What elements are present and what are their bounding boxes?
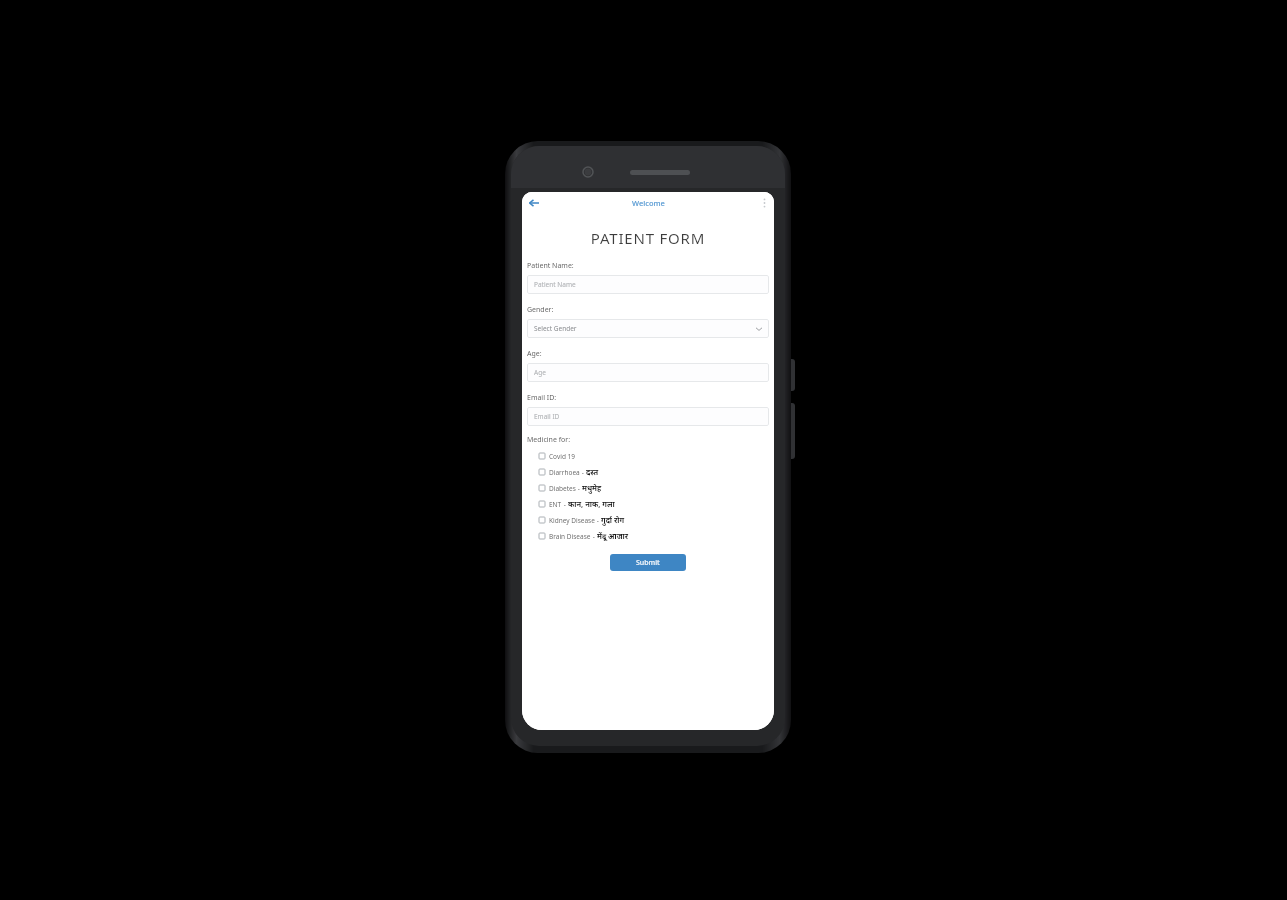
staticText: - <box>576 484 582 493</box>
staticText: ENT <box>549 500 562 509</box>
staticText: दस्त <box>586 467 599 477</box>
staticText: - <box>580 468 586 477</box>
button[interactable]: More options <box>757 195 772 210</box>
button[interactable]: Back <box>525 194 542 211</box>
staticText: Patient Name <box>534 280 576 289</box>
staticText: - <box>591 532 597 541</box>
button[interactable]: Covid 19 <box>527 448 769 464</box>
button[interactable]: Kidney Disease <box>527 512 769 528</box>
staticText: Kidney Disease <box>549 516 595 525</box>
button[interactable]: Age <box>527 363 769 382</box>
staticText: Brain Disease <box>549 532 591 541</box>
staticText: Email ID: <box>527 393 557 403</box>
staticText: मधुमेह <box>582 483 602 493</box>
button[interactable]: Select Gender <box>527 319 769 338</box>
staticText: Select Gender <box>534 324 577 333</box>
staticText: मेंदू आजार <box>597 531 629 541</box>
button[interactable]: Welcome <box>632 198 665 208</box>
button[interactable]: Brain Disease <box>527 528 769 544</box>
staticText: - <box>562 500 568 509</box>
button[interactable]: Submit <box>610 554 686 571</box>
staticText: कान, नाक, गला <box>568 499 615 509</box>
button[interactable]: Diarrhoea <box>527 464 769 480</box>
staticText: Medicine for: <box>527 435 571 445</box>
staticText: Covid 19 <box>549 452 576 461</box>
staticText: Patient Name: <box>527 261 574 271</box>
staticText: Welcome <box>632 198 665 208</box>
staticText: Age: <box>527 349 542 359</box>
button[interactable]: Diabetes <box>527 480 769 496</box>
button[interactable]: Patient Name <box>527 275 769 294</box>
staticText: PATIENT FORM <box>522 228 774 248</box>
staticText: Submit <box>636 558 660 568</box>
staticText: Diarrhoea <box>549 468 580 477</box>
button[interactable]: Email ID <box>527 407 769 426</box>
staticText: Age <box>534 368 546 377</box>
staticText: Gender: <box>527 305 554 315</box>
button[interactable]: ENT <box>527 496 769 512</box>
staticText: Diabetes <box>549 484 576 493</box>
staticText: गुर्दा रोग <box>601 515 625 525</box>
staticText: Email ID <box>534 412 560 421</box>
staticText: - <box>595 516 601 525</box>
